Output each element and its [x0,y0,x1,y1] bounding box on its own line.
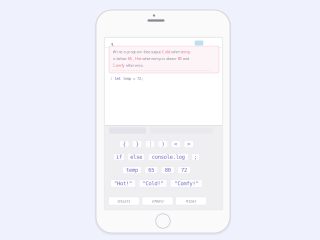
staticText: } [136,141,139,147]
staticText: { [123,141,126,147]
staticText: 65 [148,167,154,173]
staticText: console.log [152,154,185,160]
staticText: if [116,154,122,160]
staticText: when [171,49,180,54]
staticText: "Cold!" [142,180,163,187]
button[interactable]: "Comfy!" [170,180,202,187]
staticText: is below [112,56,126,61]
button[interactable]: 65 [145,166,158,173]
staticText: Comfy [112,62,124,68]
staticText: temp = 72; [123,76,143,81]
button[interactable]: ( [145,140,155,147]
staticText: "Hot!" [114,180,132,187]
button[interactable]: DELETE [108,197,139,205]
staticText: else [130,154,142,160]
staticText: 65 [128,56,132,61]
button[interactable]: > [184,140,193,147]
button[interactable]: Back [109,39,116,47]
staticText: , [133,56,134,61]
button[interactable]: ; [192,153,200,160]
button[interactable]: { [119,140,129,147]
staticText: RESET [186,198,197,204]
staticText: ) [161,141,164,147]
staticText: ; [194,154,197,160]
staticText: 1 [110,76,112,81]
staticText: ‹ [111,38,114,49]
staticText: UNDO [151,198,163,204]
staticText: temp [181,49,190,54]
staticText: ( [149,141,152,147]
staticText: otherwise. [126,62,144,68]
button[interactable]: } [132,140,142,147]
button[interactable]: console.log [148,153,188,160]
staticText: 80 [177,56,181,61]
button[interactable]: else [128,153,145,160]
button[interactable]: if [113,153,124,160]
button[interactable]: 80 [161,166,174,173]
staticText: Write a program that output [112,49,160,54]
button[interactable]: temp [122,166,141,173]
button[interactable]: "Hot!" [111,180,136,187]
button[interactable]: ) [158,140,168,147]
staticText: when temp is above [142,56,176,61]
staticText: 80 [165,167,171,173]
staticText: < [174,141,177,147]
button[interactable]: UNDO [142,197,173,205]
staticText: and [183,56,189,61]
button[interactable]: 72 [178,166,191,173]
staticText: 72 [181,167,187,173]
staticText: "Comfy!" [174,180,198,187]
button[interactable]: "Cold!" [139,180,167,187]
button[interactable]: < [171,140,181,147]
staticText: Cold [162,49,170,54]
button[interactable]: RESET [176,197,207,205]
staticText: > [187,141,190,147]
staticText: Hot [135,56,141,61]
staticText: let [114,76,120,81]
button[interactable]: Run code [195,40,203,45]
staticText: temp [126,167,138,173]
staticText: DELETE [117,198,130,204]
